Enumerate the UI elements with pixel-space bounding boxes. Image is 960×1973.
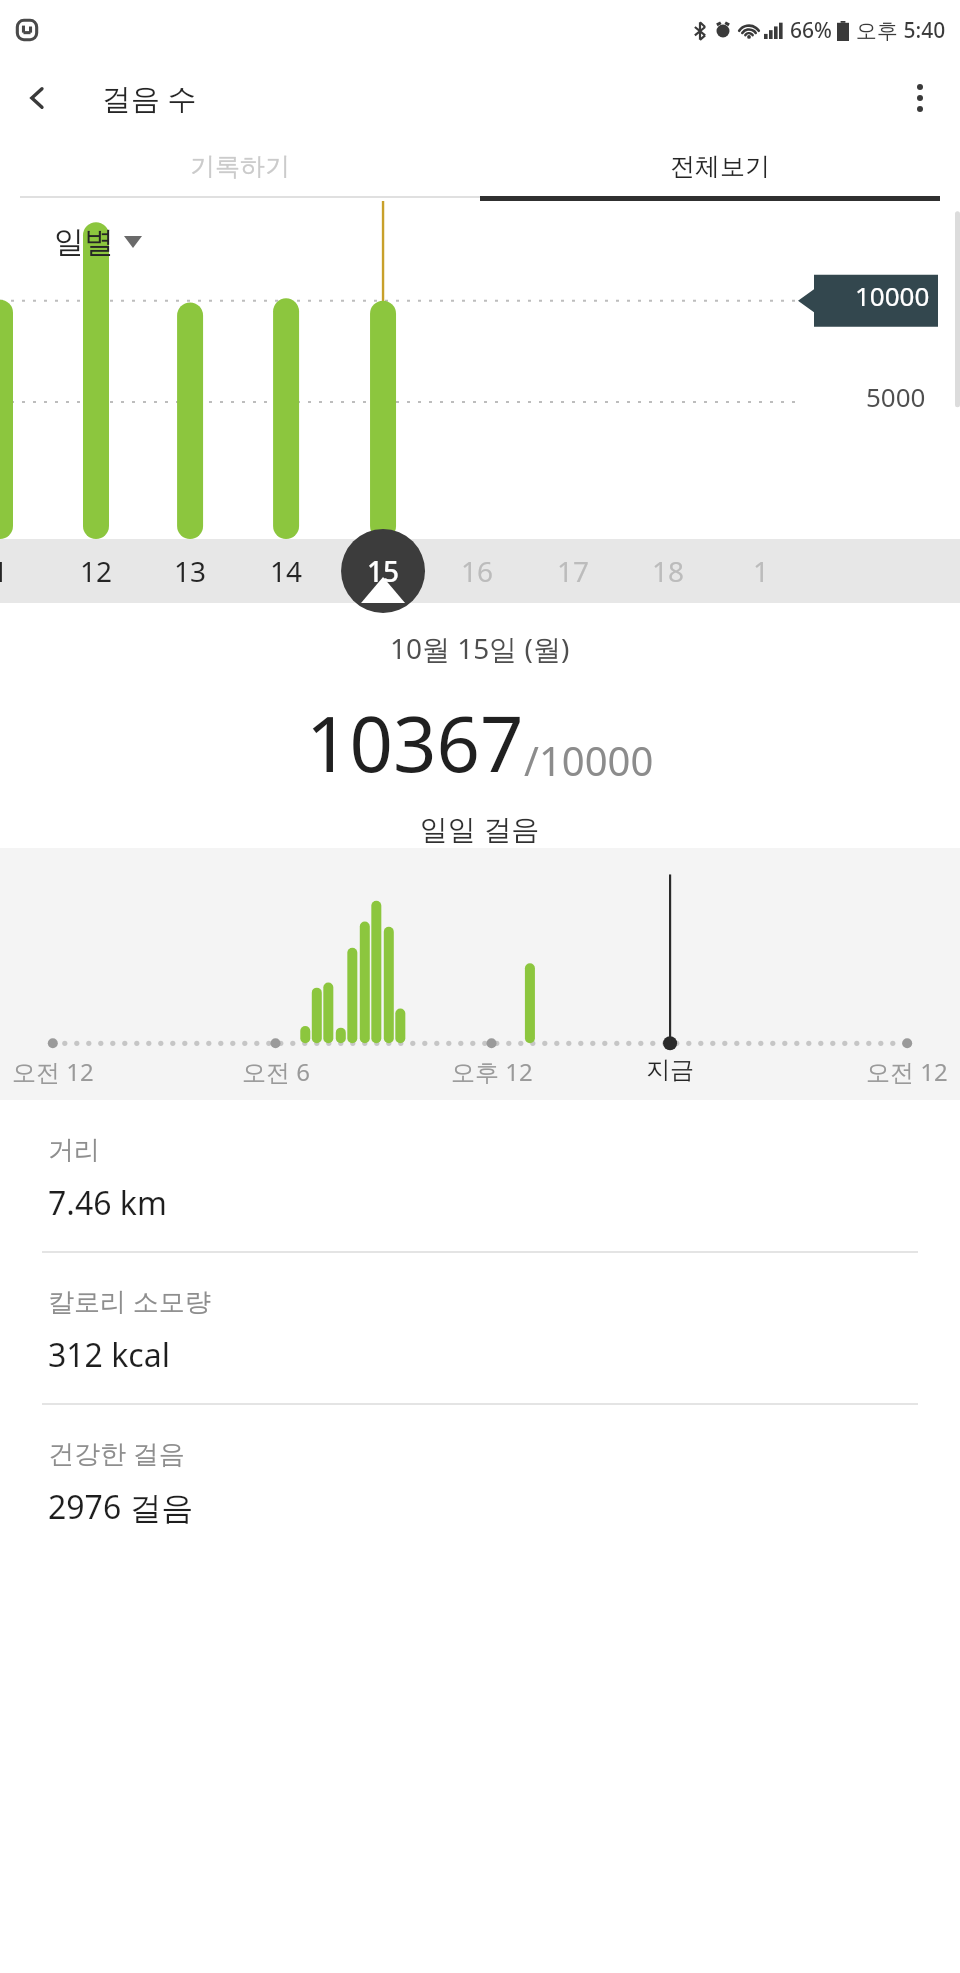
staticText: 14 <box>270 552 303 590</box>
button[interactable]: 1 <box>0 539 24 603</box>
staticText: 2976 걸음 <box>48 1485 194 1529</box>
staticText: 18 <box>652 552 685 590</box>
staticText: 지금 <box>646 1055 694 1085</box>
staticText: 기록하기 <box>190 151 290 182</box>
button[interactable]: 1 <box>737 539 785 603</box>
staticText: 5000 <box>866 379 926 414</box>
button[interactable]: 16 <box>453 539 501 603</box>
button[interactable]: 14 <box>262 539 310 603</box>
staticText: 걸음 수 <box>102 78 197 118</box>
staticText: 12 <box>80 552 113 590</box>
staticText: 일별 <box>54 223 114 261</box>
staticText: 오후 5:40 <box>856 16 946 45</box>
button[interactable]: 칼로리 소모량 <box>0 1253 960 1403</box>
staticText: 1 <box>753 552 770 590</box>
button[interactable]: 17 <box>549 539 597 603</box>
staticText: /10000 <box>524 733 654 787</box>
button[interactable]: 18 <box>644 539 692 603</box>
staticText: 312 kcal <box>48 1333 170 1377</box>
button[interactable]: 일별 <box>54 223 142 261</box>
button[interactable]: 전체보기 <box>480 136 960 196</box>
staticText: 일일 걸음 <box>420 809 540 847</box>
staticText: 7.46 km <box>48 1181 167 1225</box>
staticText: 16 <box>461 552 494 590</box>
staticText: 10000 <box>855 278 930 313</box>
staticText: 13 <box>174 552 207 590</box>
button[interactable]: 12 <box>72 539 120 603</box>
staticText: 건강한 걸음 <box>48 1435 185 1471</box>
button[interactable]: 거리 <box>0 1100 960 1251</box>
staticText: 15 <box>367 552 400 590</box>
staticText: 오후 12 <box>451 1055 533 1088</box>
staticText: 거리 <box>48 1134 100 1167</box>
button[interactable]: Back <box>10 70 66 126</box>
button[interactable]: 15 <box>359 539 407 603</box>
staticText: 10367 <box>306 691 524 795</box>
button[interactable]: More options <box>892 70 948 126</box>
staticText: 오전 12 <box>12 1055 94 1088</box>
button[interactable]: 기록하기 <box>0 136 480 196</box>
button[interactable]: 건강한 걸음 <box>0 1405 960 1555</box>
button[interactable]: 13 <box>166 539 214 603</box>
staticText: 전체보기 <box>670 151 770 182</box>
staticText: 오전 6 <box>242 1055 310 1088</box>
staticText: 10월 15일 (월) <box>390 629 570 667</box>
staticText: 17 <box>557 552 590 590</box>
staticText: 1 <box>0 552 9 590</box>
staticText: 오전 12 <box>866 1055 948 1088</box>
staticText: 칼로리 소모량 <box>48 1283 211 1319</box>
staticText: 66% <box>790 16 832 45</box>
